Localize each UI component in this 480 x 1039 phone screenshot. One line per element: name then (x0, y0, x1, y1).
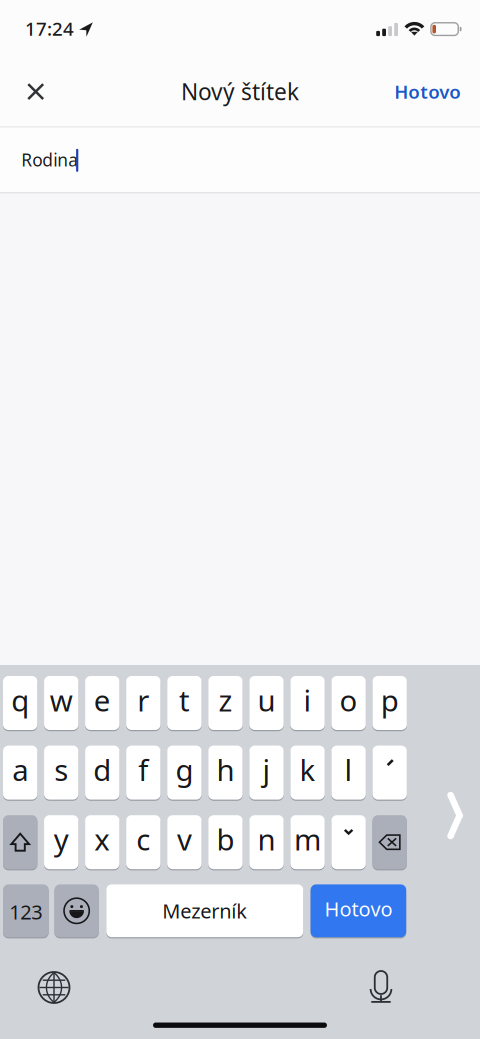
staticText: y (54, 820, 69, 859)
button[interactable]: w (44, 676, 78, 730)
button[interactable]: p (372, 676, 407, 730)
staticText: w (50, 680, 73, 719)
staticText: d (93, 750, 111, 789)
staticText: c (136, 820, 150, 859)
staticText: e (94, 680, 111, 719)
button[interactable]: Mezerník (106, 884, 303, 937)
button[interactable]: k (290, 746, 325, 800)
button[interactable]: s (44, 746, 78, 800)
staticText: r (137, 680, 149, 719)
button[interactable]: Diktování (354, 959, 408, 1013)
staticText: v (177, 820, 192, 859)
button[interactable]: y (44, 815, 78, 869)
button[interactable]: x (85, 815, 119, 869)
staticText: 123 (9, 898, 42, 925)
button[interactable]: o (331, 676, 366, 730)
button[interactable]: l (331, 746, 366, 800)
staticText: q (11, 680, 29, 719)
button[interactable]: 123 (3, 884, 49, 937)
staticText: t (179, 680, 190, 719)
staticText: x (94, 820, 110, 859)
button[interactable]: Zavřít (12, 68, 60, 116)
button[interactable]: Shift (3, 815, 37, 869)
staticText: z (218, 680, 232, 719)
staticText: Hotovo (324, 895, 392, 922)
button[interactable]: Čárka (372, 746, 407, 800)
staticText: p (381, 680, 399, 719)
button[interactable]: Hotovo (383, 67, 473, 115)
staticText: l (345, 750, 353, 789)
staticText: n (257, 820, 275, 859)
staticText: Mezerník (162, 897, 247, 924)
button[interactable]: Přepnout klávesnici (27, 960, 81, 1014)
button[interactable]: v (167, 815, 202, 869)
button[interactable]: a (3, 746, 37, 800)
staticText: o (340, 680, 358, 719)
button[interactable]: z (208, 676, 243, 730)
staticText: h (216, 750, 234, 789)
staticText: 17:24 (25, 16, 74, 41)
button[interactable]: b (208, 815, 243, 869)
button[interactable]: g (167, 746, 202, 800)
staticText: m (294, 820, 321, 859)
staticText: Rodina (21, 148, 78, 171)
staticText: a (12, 750, 28, 789)
button[interactable]: m (290, 815, 325, 869)
staticText: b (216, 820, 234, 859)
button[interactable]: r (126, 676, 160, 730)
staticText: f (138, 750, 148, 789)
button[interactable]: i (290, 676, 325, 730)
button[interactable]: q (3, 676, 37, 730)
button[interactable]: n (249, 815, 284, 869)
button[interactable]: u (249, 676, 284, 730)
button[interactable]: t (167, 676, 202, 730)
button[interactable]: Hotovo (311, 884, 406, 937)
staticText: Nový štítek (181, 76, 299, 106)
staticText: s (54, 750, 68, 789)
button[interactable]: Smazat (372, 815, 407, 869)
staticText: u (257, 680, 275, 719)
staticText: Hotovo (394, 79, 461, 104)
staticText: g (175, 750, 193, 789)
staticText: j (262, 750, 270, 789)
button[interactable]: h (208, 746, 243, 800)
button[interactable]: c (126, 815, 160, 869)
button[interactable]: Emoji (54, 884, 99, 937)
button[interactable]: j (249, 746, 284, 800)
button[interactable]: d (85, 746, 119, 800)
button[interactable]: Rozšířit klávesnici (427, 779, 480, 851)
staticText: i (303, 680, 311, 719)
staticText: k (299, 750, 315, 789)
button[interactable]: Háček (331, 815, 366, 869)
button[interactable]: f (126, 746, 160, 800)
button[interactable]: e (85, 676, 119, 730)
